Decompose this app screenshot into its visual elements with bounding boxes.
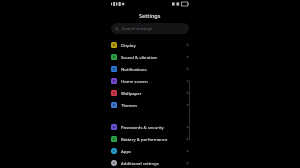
button[interactable]: Wallpaper bbox=[108, 87, 192, 99]
staticText: Wallpaper bbox=[121, 90, 186, 96]
button[interactable]: Apps bbox=[108, 145, 192, 157]
staticText: Additional settings bbox=[121, 160, 186, 166]
staticText: Display bbox=[121, 42, 186, 48]
staticText: Apps bbox=[121, 148, 186, 154]
button[interactable]: Battery & performance bbox=[108, 133, 192, 145]
button[interactable]: Additional settings bbox=[108, 157, 192, 168]
staticText: Passwords & security bbox=[121, 124, 186, 130]
staticText: Home screen bbox=[121, 78, 186, 84]
button[interactable]: Display bbox=[108, 39, 192, 51]
button[interactable]: Search settings bbox=[111, 23, 189, 34]
staticText: Search settings bbox=[122, 26, 152, 32]
staticText: Notifications bbox=[121, 66, 186, 72]
button[interactable]: Passwords & security bbox=[108, 121, 192, 133]
button[interactable]: Themes bbox=[108, 99, 192, 111]
button[interactable]: Notifications bbox=[108, 63, 192, 75]
staticText: Sound & vibration bbox=[121, 54, 186, 60]
button[interactable]: Sound & vibration bbox=[108, 51, 192, 63]
staticText: Battery & performance bbox=[121, 136, 186, 142]
staticText: Themes bbox=[121, 102, 186, 108]
staticText: Settings bbox=[139, 12, 161, 19]
button[interactable]: Home screen bbox=[108, 75, 192, 87]
